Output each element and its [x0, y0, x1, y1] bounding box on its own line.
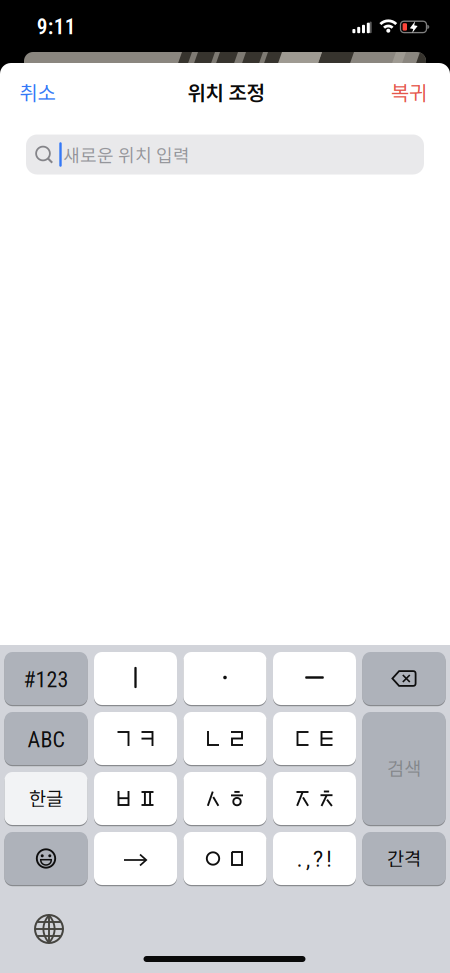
- button[interactable]: 취소: [19, 77, 55, 106]
- button[interactable]: ㅇㅁ: [183, 831, 266, 886]
- button[interactable]: Switch keyboard: [27, 907, 71, 951]
- button[interactable]: Delete: [362, 651, 445, 706]
- staticText: 복귀: [391, 77, 427, 106]
- button[interactable]: 간격: [362, 831, 445, 886]
- button[interactable]: ㅅㅎ: [183, 771, 266, 826]
- staticText: ?: [313, 847, 323, 872]
- button[interactable]: ㅂㅍ: [94, 771, 177, 826]
- staticText: 취소: [19, 77, 55, 106]
- button[interactable]: #123: [4, 651, 87, 706]
- button[interactable]: ㄱㅋ: [94, 711, 177, 766]
- staticText: .: [297, 847, 303, 872]
- button[interactable]: ㄴㄹ: [183, 711, 266, 766]
- staticText: 한글: [29, 784, 63, 811]
- button[interactable]: ㄷㅌ: [273, 711, 356, 766]
- staticText: #123: [23, 667, 68, 693]
- staticText: 검색: [387, 754, 421, 781]
- button[interactable]: 복귀: [391, 77, 427, 106]
- staticText: 위치 조정: [187, 77, 264, 106]
- button[interactable]: Emoji: [4, 831, 87, 886]
- staticText: 9:11: [37, 14, 76, 39]
- button[interactable]: ㅣ: [94, 651, 177, 706]
- button[interactable]: 새로운 위치 입력: [26, 134, 424, 174]
- button[interactable]: Araea: [183, 651, 266, 706]
- button[interactable]: Next: [94, 831, 177, 886]
- button[interactable]: 검색: [362, 711, 445, 826]
- staticText: ABC: [27, 727, 64, 753]
- staticText: ,: [306, 847, 310, 872]
- button[interactable]: ABC: [4, 711, 87, 766]
- staticText: 간격: [387, 844, 421, 871]
- button[interactable]: 한글: [4, 771, 87, 826]
- button[interactable]: ㅡ: [273, 651, 356, 706]
- button[interactable]: .: [273, 831, 356, 886]
- staticText: 새로운 위치 입력: [63, 141, 190, 168]
- staticText: !: [326, 847, 332, 872]
- button[interactable]: ㅈㅊ: [273, 771, 356, 826]
